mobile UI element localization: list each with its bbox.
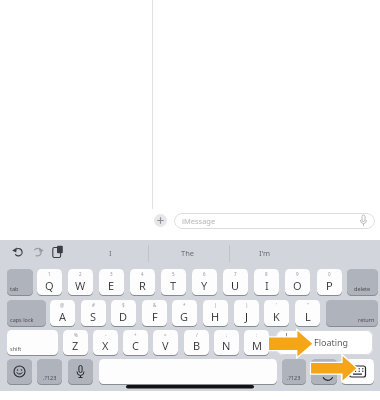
staticText: # [92,302,95,308]
staticText: = [164,332,167,338]
staticText: .?123 [287,374,301,381]
button[interactable]: " [295,300,320,326]
staticText: 6 [203,271,206,277]
staticText: C [132,338,139,353]
staticText: - [105,332,107,338]
staticText: % [74,332,78,338]
button[interactable]: return [326,300,378,326]
button[interactable]: / [184,330,209,355]
staticText: T [170,278,177,293]
button[interactable] [154,214,167,227]
staticText: Q [45,278,54,293]
staticText: Floating [314,336,349,348]
button[interactable]: % [63,330,88,355]
staticText: B [193,338,201,353]
button[interactable]: 6 [192,269,217,295]
staticText: 0 [328,271,331,277]
staticText: / [196,332,198,338]
staticText: 9 [296,271,299,277]
staticText: & [153,302,157,308]
staticText: E [108,278,115,293]
button[interactable]: .?123 [282,359,306,384]
staticText: caps lock [10,316,34,323]
staticText: Y [201,278,208,293]
button[interactable]: @ [50,300,75,326]
button[interactable]: & [142,300,167,326]
button[interactable]: delete [347,269,378,295]
staticText: ) [246,302,248,308]
staticText: : [256,332,258,338]
button[interactable]: 0 [317,269,342,295]
staticText: M [252,338,262,353]
staticText: $ [122,302,125,308]
staticText: I [265,278,269,293]
staticText: G [180,309,189,324]
staticText: X [102,338,109,353]
button[interactable]: 4 [130,269,155,295]
staticText: @ [60,302,65,308]
staticText: S [90,309,97,324]
staticText: * [183,302,186,308]
staticText: 1 [48,271,51,277]
button[interactable]: - [93,330,118,355]
staticText: shift [10,345,22,352]
button[interactable]: I'm [228,243,301,263]
button[interactable] [311,359,337,384]
button[interactable]: 7 [223,269,248,295]
staticText: N [222,338,231,353]
staticText: J [245,309,249,324]
button[interactable]: 3 [99,269,124,295]
staticText: A [59,309,67,324]
button[interactable] [276,330,373,355]
button[interactable]: 9 [285,269,310,295]
button[interactable]: 8 [254,269,279,295]
staticText: .?123 [43,374,57,381]
button[interactable] [99,359,277,384]
staticText: delete [354,285,371,292]
button[interactable] [341,359,374,384]
button[interactable]: ) [234,300,259,326]
staticText: O [293,278,302,293]
button[interactable]: ; [214,330,239,355]
staticText: iMessage [182,216,216,226]
button[interactable]: iMessage [174,213,375,229]
button[interactable]: + [123,330,148,355]
staticText: L [305,309,311,324]
staticText: tab [10,285,19,292]
staticText: H [211,309,220,324]
button[interactable]: shift [7,330,58,355]
staticText: " [307,302,309,308]
button[interactable]: 1 [37,269,62,295]
button[interactable]: # [81,300,106,326]
button[interactable]: : [244,330,269,355]
staticText: 5 [172,271,175,277]
button[interactable]: = [153,330,178,355]
staticText: 2 [79,271,82,277]
staticText: Z [72,338,79,353]
staticText: 8 [265,271,268,277]
staticText: 3 [110,271,113,277]
staticText: 7 [234,271,237,277]
staticText: D [119,309,128,324]
staticText: return [358,316,375,323]
button[interactable]: The [148,243,228,263]
staticText: ' [276,302,278,308]
staticText: ( [215,302,217,308]
button[interactable]: caps lock [7,300,46,326]
button[interactable]: I [78,243,142,263]
button[interactable]: ( [203,300,228,326]
button[interactable]: * [172,300,197,326]
staticText: The [181,248,195,258]
button[interactable]: 5 [161,269,186,295]
button[interactable]: .?123 [37,359,62,384]
button[interactable]: 2 [68,269,93,295]
staticText: + [134,332,137,338]
staticText: R [139,278,146,293]
button[interactable]: $ [111,300,136,326]
button[interactable]: ' [264,300,289,326]
staticText: K [273,309,280,324]
button[interactable] [68,359,93,384]
button[interactable]: tab [7,269,33,295]
button[interactable] [7,359,32,384]
staticText: ; [226,332,228,338]
